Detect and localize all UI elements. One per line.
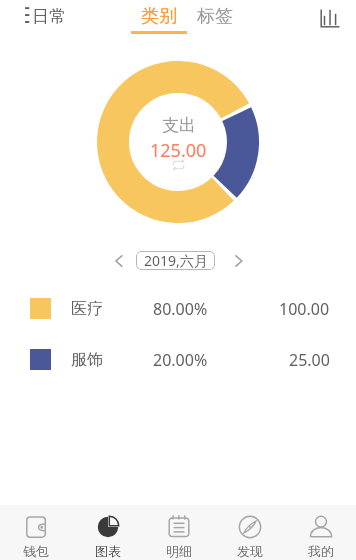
button[interactable]: Statistics: [320, 9, 340, 28]
staticText: 80.00%: [153, 298, 208, 319]
staticText: 100.00: [279, 298, 330, 319]
button[interactable]: 日常: [25, 6, 66, 27]
button[interactable]: 发现: [214, 505, 285, 559]
button[interactable]: Next month: [227, 252, 245, 270]
staticText: 医疗: [71, 299, 103, 319]
button[interactable]: 2019,六月: [136, 251, 215, 270]
button[interactable]: 明细: [143, 505, 214, 559]
staticText: 图表: [95, 543, 121, 559]
staticText: 发现: [237, 543, 263, 559]
staticText: 25.00: [289, 349, 330, 370]
button[interactable]: 标签: [197, 5, 233, 28]
staticText: 服饰: [71, 350, 103, 370]
staticText: 明细: [166, 543, 192, 559]
button[interactable]: 类别: [141, 5, 177, 28]
staticText: 20.00%: [153, 349, 208, 370]
button[interactable]: 钱包: [0, 505, 72, 559]
staticText: 日常: [32, 6, 66, 27]
staticText: 类别: [141, 5, 177, 28]
button[interactable]: Previous month: [114, 252, 132, 270]
staticText: 2019,六月: [144, 251, 208, 270]
button[interactable]: 我的: [285, 505, 356, 559]
staticText: 125.00: [150, 138, 207, 163]
button[interactable]: 医疗: [0, 298, 356, 319]
staticText: 标签: [197, 5, 233, 28]
staticText: 支出: [162, 115, 196, 136]
button[interactable]: 图表: [72, 505, 143, 559]
staticText: 钱包: [23, 543, 49, 559]
staticText: 我的: [308, 543, 334, 559]
button[interactable]: 服饰: [0, 349, 356, 370]
